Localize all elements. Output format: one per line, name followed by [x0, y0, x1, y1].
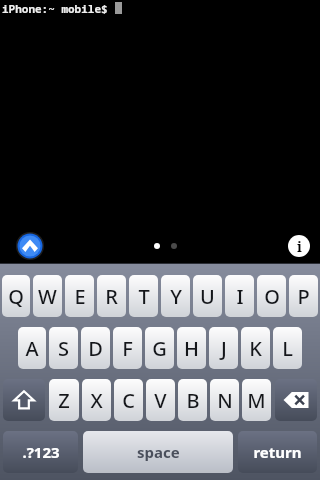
staticText: K — [249, 335, 262, 362]
staticText: D — [88, 335, 103, 362]
staticText: S — [58, 335, 69, 362]
staticText: G — [152, 335, 167, 362]
staticText: R — [105, 283, 118, 310]
staticText: O — [264, 283, 280, 310]
button[interactable]: Backspace — [275, 379, 317, 421]
button[interactable]: A — [18, 327, 46, 369]
button[interactable]: return — [238, 431, 317, 473]
staticText: T — [138, 283, 150, 310]
staticText: H — [184, 335, 199, 362]
staticText: space — [137, 442, 180, 462]
button[interactable]: S — [49, 327, 78, 369]
button[interactable]: L — [273, 327, 302, 369]
button[interactable]: Z — [49, 379, 79, 421]
button[interactable]: T — [129, 275, 158, 317]
button[interactable]: N — [210, 379, 239, 421]
staticText: V — [154, 387, 167, 414]
button[interactable]: .?123 — [3, 431, 78, 473]
staticText: Z — [58, 387, 70, 414]
button[interactable]: P — [289, 275, 318, 317]
staticText: P — [297, 283, 310, 310]
button[interactable]: J — [209, 327, 238, 369]
button[interactable]: X — [82, 379, 111, 421]
button[interactable]: B — [178, 379, 207, 421]
button[interactable]: V — [146, 379, 175, 421]
button[interactable]: space — [83, 431, 233, 473]
button[interactable]: C — [114, 379, 143, 421]
staticText: M — [247, 387, 266, 414]
button[interactable]: W — [33, 275, 62, 317]
staticText: N — [217, 387, 233, 414]
staticText: return — [253, 442, 302, 462]
button[interactable]: H — [177, 327, 206, 369]
staticText: Y — [170, 283, 182, 310]
staticText: B — [186, 387, 200, 414]
staticText: F — [122, 335, 133, 362]
staticText: W — [38, 283, 57, 310]
button[interactable]: D — [81, 327, 110, 369]
staticText: A — [25, 335, 39, 362]
staticText: i — [297, 237, 302, 256]
staticText: L — [282, 335, 293, 362]
button[interactable]: Show keyboard — [16, 232, 44, 260]
staticText: I — [236, 283, 244, 310]
staticText: iPhone:~ mobile$ — [2, 1, 115, 16]
button[interactable]: Q — [2, 275, 30, 317]
staticText: C — [122, 387, 135, 414]
staticText: J — [221, 335, 227, 362]
button[interactable]: F — [113, 327, 142, 369]
button[interactable]: O — [257, 275, 286, 317]
staticText: .?123 — [22, 442, 60, 462]
staticText: U — [200, 283, 215, 310]
staticText: X — [90, 387, 103, 414]
button[interactable]: I — [225, 275, 254, 317]
staticText: E — [74, 283, 86, 310]
staticText: Q — [8, 283, 24, 310]
button[interactable]: E — [65, 275, 94, 317]
button[interactable]: Y — [161, 275, 190, 317]
button[interactable]: Info — [288, 235, 310, 257]
button[interactable]: G — [145, 327, 174, 369]
button[interactable]: U — [193, 275, 222, 317]
button[interactable]: R — [97, 275, 126, 317]
button[interactable]: M — [242, 379, 271, 421]
button[interactable]: K — [241, 327, 270, 369]
button[interactable]: Shift — [3, 379, 45, 421]
